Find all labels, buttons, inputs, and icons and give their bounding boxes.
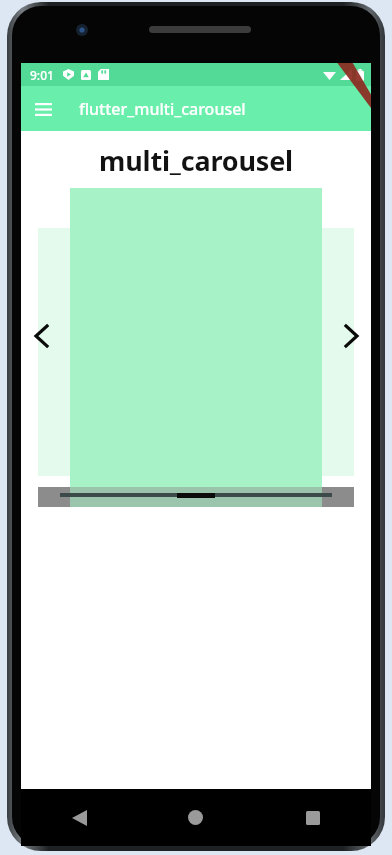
staticText: flutter_multi_carousel xyxy=(79,98,246,120)
button[interactable]: Next xyxy=(331,316,371,356)
staticText: 9:01 xyxy=(30,67,54,83)
button[interactable]: Recent apps xyxy=(254,789,371,846)
button[interactable]: Adjacent carousel items xyxy=(38,228,354,476)
button[interactable]: Previous xyxy=(21,316,61,356)
button[interactable]: Open navigation menu xyxy=(21,87,65,131)
button[interactable]: Back xyxy=(21,789,137,846)
button[interactable]: Current carousel item xyxy=(70,188,322,492)
staticText: multi_carousel xyxy=(21,142,371,179)
button[interactable]: Home xyxy=(137,789,254,846)
